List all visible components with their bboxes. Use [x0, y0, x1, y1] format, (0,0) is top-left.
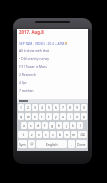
staticText: q — [20, 114, 23, 119]
button[interactable]: 2 — [25, 104, 31, 111]
button[interactable]: h — [56, 122, 62, 129]
staticText: d — [37, 123, 40, 128]
button[interactable]: . — [68, 140, 75, 148]
staticText: English — [46, 142, 58, 147]
button[interactable]: 7 — [60, 104, 66, 111]
staticText: 7 — [62, 105, 64, 110]
staticText: a — [23, 123, 25, 128]
staticText: 5 — [48, 105, 50, 110]
button[interactable]: 6 — [53, 104, 59, 111]
button[interactable]: m — [71, 131, 77, 138]
button[interactable]: ☺ — [28, 140, 35, 148]
button[interactable]: d — [35, 122, 41, 129]
staticText: ☺ — [30, 142, 34, 146]
button[interactable]: 3 — [32, 104, 38, 111]
staticText: 2 Research — [19, 72, 36, 76]
staticText: m — [72, 132, 76, 137]
button[interactable]: i — [67, 113, 73, 120]
button[interactable]: Done — [76, 140, 87, 148]
staticText: l — [80, 123, 81, 128]
button[interactable]: o — [74, 113, 80, 120]
staticText: ⇧ — [22, 133, 25, 137]
staticText: • Old orenity ruiney — [19, 56, 49, 60]
button[interactable]: 0 — [81, 104, 87, 111]
staticText: 6 — [55, 105, 57, 110]
staticText: 2017. Aug.8 — [19, 29, 44, 35]
button[interactable]: t — [46, 113, 52, 120]
staticText: All it drew with that — [19, 48, 49, 52]
button[interactable]: j — [63, 122, 69, 129]
button[interactable]: n — [64, 131, 70, 138]
button[interactable]: g — [49, 122, 55, 129]
button[interactable]: 5 — [46, 104, 52, 111]
staticText: 3 — [34, 105, 36, 110]
staticText: 9 — [76, 105, 78, 110]
staticText: 1 — [20, 105, 22, 110]
staticText: 7 rasthan — [19, 88, 34, 92]
button[interactable]: l — [77, 122, 83, 129]
staticText: 4 Spr — [19, 80, 27, 84]
button[interactable]: x — [36, 131, 42, 138]
staticText: Sym — [19, 142, 26, 147]
staticText: y — [55, 114, 57, 119]
button[interactable] — [17, 99, 88, 103]
button[interactable]: 1 — [18, 104, 24, 111]
staticText: Done — [77, 142, 86, 147]
button[interactable]: w — [25, 113, 31, 120]
staticText: h — [58, 123, 61, 128]
button[interactable]: b — [57, 131, 63, 138]
button[interactable]: y — [53, 113, 59, 120]
staticText: . — [71, 142, 72, 147]
button[interactable]: r — [39, 113, 45, 120]
button[interactable]: c — [43, 131, 49, 138]
button[interactable]: ⌫ — [78, 131, 87, 138]
staticText: b — [59, 132, 62, 137]
staticText: g — [51, 123, 54, 128]
button[interactable]: 9 — [74, 104, 80, 111]
staticText: n — [66, 132, 69, 137]
button[interactable]: f — [42, 122, 48, 129]
button[interactable]: u — [60, 113, 66, 120]
button[interactable]: k — [70, 122, 76, 129]
staticText: p — [83, 114, 86, 119]
button[interactable]: v — [50, 131, 56, 138]
staticText: 2 — [27, 105, 29, 110]
button[interactable]: s — [28, 122, 34, 129]
button[interactable]: a — [21, 122, 27, 129]
button[interactable]: z — [29, 131, 35, 138]
staticText: x — [38, 132, 40, 137]
button[interactable]: English — [36, 140, 67, 148]
staticText: (11) Tower is Mars — [19, 64, 47, 68]
button[interactable]: p — [81, 113, 87, 120]
staticText: k — [72, 123, 74, 128]
staticText: ⌫ — [80, 133, 85, 137]
staticText: c — [45, 132, 47, 137]
button[interactable]: 4 — [39, 104, 45, 111]
staticText: e — [34, 114, 36, 119]
button[interactable]: e — [32, 113, 38, 120]
staticText: 0 — [83, 105, 85, 110]
staticText: o — [76, 114, 79, 119]
staticText: i — [70, 114, 71, 119]
staticText: SEP TAM - VIDEO : 20.0 + ATM.0 — [19, 41, 68, 45]
staticText: j — [66, 123, 67, 128]
staticText: z — [31, 132, 33, 137]
staticText: 4 — [41, 105, 43, 110]
staticText: w — [27, 114, 30, 119]
staticText: 8 — [69, 105, 71, 110]
staticText: t — [48, 114, 50, 119]
staticText: v — [52, 132, 54, 137]
button[interactable]: q — [18, 113, 24, 120]
button[interactable]: Sym — [18, 140, 27, 148]
staticText: f — [44, 123, 46, 128]
staticText: r — [41, 114, 43, 119]
staticText: s — [30, 123, 32, 128]
button[interactable]: ⇧ — [18, 131, 28, 138]
button[interactable]: 8 — [67, 104, 73, 111]
staticText: u — [62, 114, 65, 119]
